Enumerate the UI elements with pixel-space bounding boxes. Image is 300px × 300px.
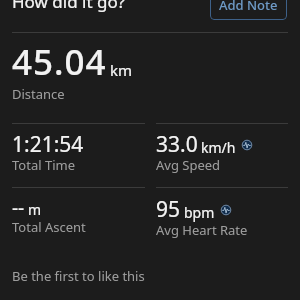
button[interactable]: Be the first to like this — [0, 262, 300, 286]
staticText: Total Ascent — [12, 218, 86, 236]
staticText: 33.0 — [156, 130, 198, 159]
staticText: m — [28, 200, 42, 219]
staticText: bpm — [184, 203, 215, 222]
staticText: 45.04 — [12, 38, 107, 86]
button[interactable]: Add Note — [210, 0, 287, 20]
staticText: 95 — [156, 195, 181, 224]
staticText: km/h — [201, 138, 236, 157]
staticText: 1:21:54 — [12, 130, 84, 159]
staticText: -- — [12, 195, 25, 221]
staticText: Avg Heart Rate — [156, 221, 248, 239]
staticText: km — [110, 60, 133, 80]
staticText: Avg Speed — [156, 156, 221, 174]
staticText: How did it go? — [12, 0, 126, 13]
staticText: Distance — [12, 85, 65, 103]
staticText: Be the first to like this — [12, 267, 145, 285]
staticText: Add Note — [219, 0, 278, 14]
staticText: Total Time — [12, 156, 75, 174]
